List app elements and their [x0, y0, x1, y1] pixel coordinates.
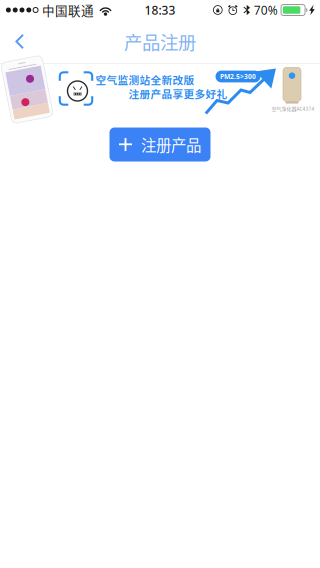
button[interactable]: 注册产品 — [109, 127, 210, 161]
staticText: PM2.5>300 — [220, 72, 256, 81]
staticText: 空气监测站全新改版 — [95, 72, 194, 87]
staticText: 18:33 — [144, 2, 175, 18]
staticText: 空气净化器AC4374 — [271, 105, 314, 112]
staticText: 注册产品享更多好礼 — [128, 86, 227, 101]
staticText: 中国联通 — [42, 1, 94, 19]
staticText: 产品注册 — [124, 28, 196, 55]
staticText: 70% — [254, 2, 278, 18]
staticText: 注册产品 — [141, 133, 201, 156]
button[interactable]: Back — [0, 20, 40, 63]
button[interactable]: 空气监测站全新改版 — [0, 63, 320, 115]
